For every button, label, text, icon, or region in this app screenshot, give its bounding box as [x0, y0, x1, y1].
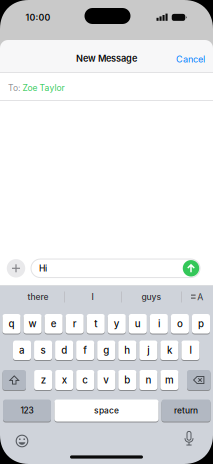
staticText: g: [103, 344, 109, 356]
staticText: a: [19, 344, 25, 356]
staticText: u: [135, 318, 141, 330]
button[interactable]: Emoji: [15, 434, 29, 448]
button[interactable]: k: [160, 340, 178, 360]
button[interactable]: Add attachment: [7, 259, 25, 278]
staticText: t: [94, 318, 97, 330]
button[interactable]: r: [66, 313, 84, 334]
staticText: s: [41, 344, 46, 356]
button[interactable]: q: [2, 313, 21, 334]
button[interactable]: Autofill: [189, 288, 206, 305]
staticText: l: [189, 344, 191, 356]
staticText: A: [197, 292, 203, 302]
button[interactable]: Cancel: [176, 54, 205, 65]
button[interactable]: j: [139, 340, 157, 360]
staticText: Cancel: [176, 54, 205, 65]
staticText: there: [27, 292, 48, 302]
button[interactable]: w: [24, 313, 42, 334]
staticText: b: [124, 374, 130, 386]
button[interactable]: Send: [183, 260, 199, 277]
button[interactable]: 123: [3, 399, 51, 422]
button[interactable]: h: [118, 340, 136, 360]
staticText: I: [91, 292, 93, 302]
staticText: k: [167, 344, 172, 356]
staticText: c: [82, 374, 88, 386]
button[interactable]: n: [139, 369, 157, 390]
staticText: v: [103, 374, 109, 386]
staticText: 10:00: [25, 12, 50, 23]
staticText: j: [147, 344, 149, 356]
button[interactable]: l: [181, 340, 199, 360]
button[interactable]: i: [150, 313, 168, 334]
staticText: o: [177, 318, 183, 330]
button[interactable]: I: [91, 289, 93, 305]
button[interactable]: v: [97, 369, 115, 390]
button[interactable]: Shift: [2, 369, 26, 390]
staticText: z: [41, 374, 46, 386]
button[interactable]: Dictation: [182, 430, 196, 450]
staticText: q: [8, 318, 14, 330]
staticText: guys: [141, 292, 161, 302]
button[interactable]: t: [87, 313, 105, 334]
button[interactable]: s: [34, 340, 52, 360]
staticText: n: [145, 374, 151, 386]
button[interactable]: o: [171, 313, 189, 334]
button[interactable]: d: [55, 340, 73, 360]
button[interactable]: space: [54, 399, 158, 422]
staticText: e: [51, 318, 57, 330]
staticText: r: [73, 318, 77, 330]
button[interactable]: there: [27, 289, 48, 305]
button[interactable]: p: [192, 313, 210, 334]
staticText: f: [83, 344, 87, 356]
staticText: m: [165, 374, 174, 386]
button[interactable]: x: [55, 369, 73, 390]
button[interactable]: z: [34, 369, 52, 390]
staticText: p: [198, 318, 204, 330]
button[interactable]: e: [45, 313, 63, 334]
staticText: h: [124, 344, 130, 356]
staticText: i: [158, 318, 160, 330]
button[interactable]: y: [108, 313, 126, 334]
staticText: 123: [20, 405, 33, 416]
staticText: x: [62, 374, 67, 386]
staticText: Zoe Taylor: [22, 83, 64, 93]
button[interactable]: b: [118, 369, 136, 390]
staticText: y: [114, 318, 120, 330]
button[interactable]: c: [76, 369, 94, 390]
staticText: To:: [8, 83, 20, 93]
button[interactable]: Delete: [187, 369, 210, 390]
button[interactable]: guys: [141, 289, 161, 305]
button[interactable]: return: [161, 399, 210, 422]
button[interactable]: g: [97, 340, 115, 360]
staticText: space: [94, 405, 119, 416]
button[interactable]: m: [160, 369, 178, 390]
staticText: w: [29, 318, 37, 330]
button[interactable]: f: [76, 340, 94, 360]
staticText: Hi: [39, 263, 47, 274]
button[interactable]: a: [13, 340, 31, 360]
button[interactable]: u: [129, 313, 147, 334]
staticText: d: [61, 344, 67, 356]
staticText: New Message: [76, 53, 137, 64]
staticText: return: [174, 405, 198, 416]
